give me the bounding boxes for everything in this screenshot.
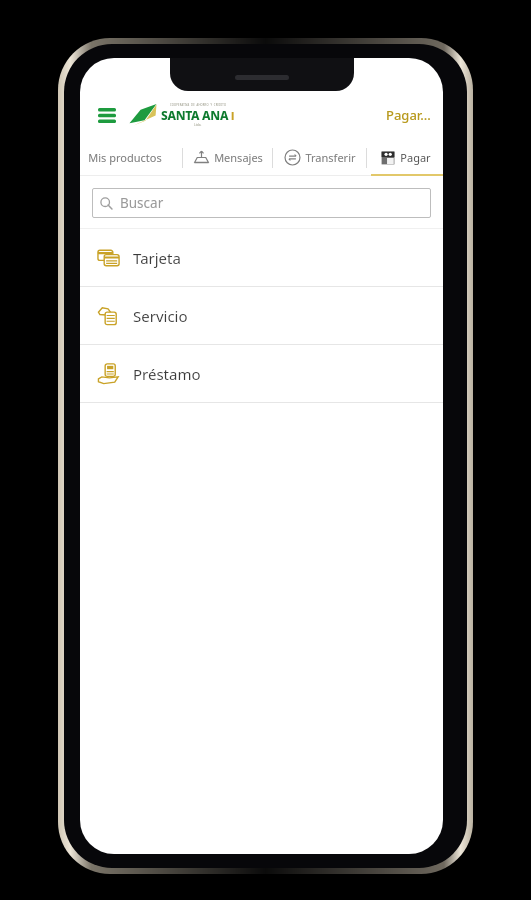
staticText: Ltda. [194,123,202,127]
button[interactable]: Tarjeta [80,229,443,286]
staticText: Transferir [305,150,356,165]
staticText: Buscar [120,194,164,212]
button[interactable]: Santa Ana [128,102,235,128]
button[interactable]: Buscar [92,188,431,218]
staticText: COOPERATIVA DE AHORRO Y CREDITO [170,103,227,107]
staticText: Servicio [133,306,188,326]
staticText: Mensajes [214,150,263,165]
button[interactable]: Mensajes [183,139,272,176]
button[interactable]: Transferir [273,139,366,176]
button[interactable]: Préstamo [80,345,443,402]
button[interactable]: Pagar [367,139,443,176]
staticText: Mis productos [88,150,162,165]
staticText: Préstamo [133,364,201,384]
button[interactable]: Mis productos [80,139,176,176]
staticText: Pagar... [386,106,431,124]
button[interactable]: Pagar... [382,100,435,130]
staticText: l [231,108,235,123]
staticText: Pagar [400,150,431,165]
staticText: SANTA ANA [161,107,229,123]
staticText: Tarjeta [133,248,181,268]
button[interactable]: Servicio [80,287,443,344]
button[interactable]: Menú [89,97,125,133]
